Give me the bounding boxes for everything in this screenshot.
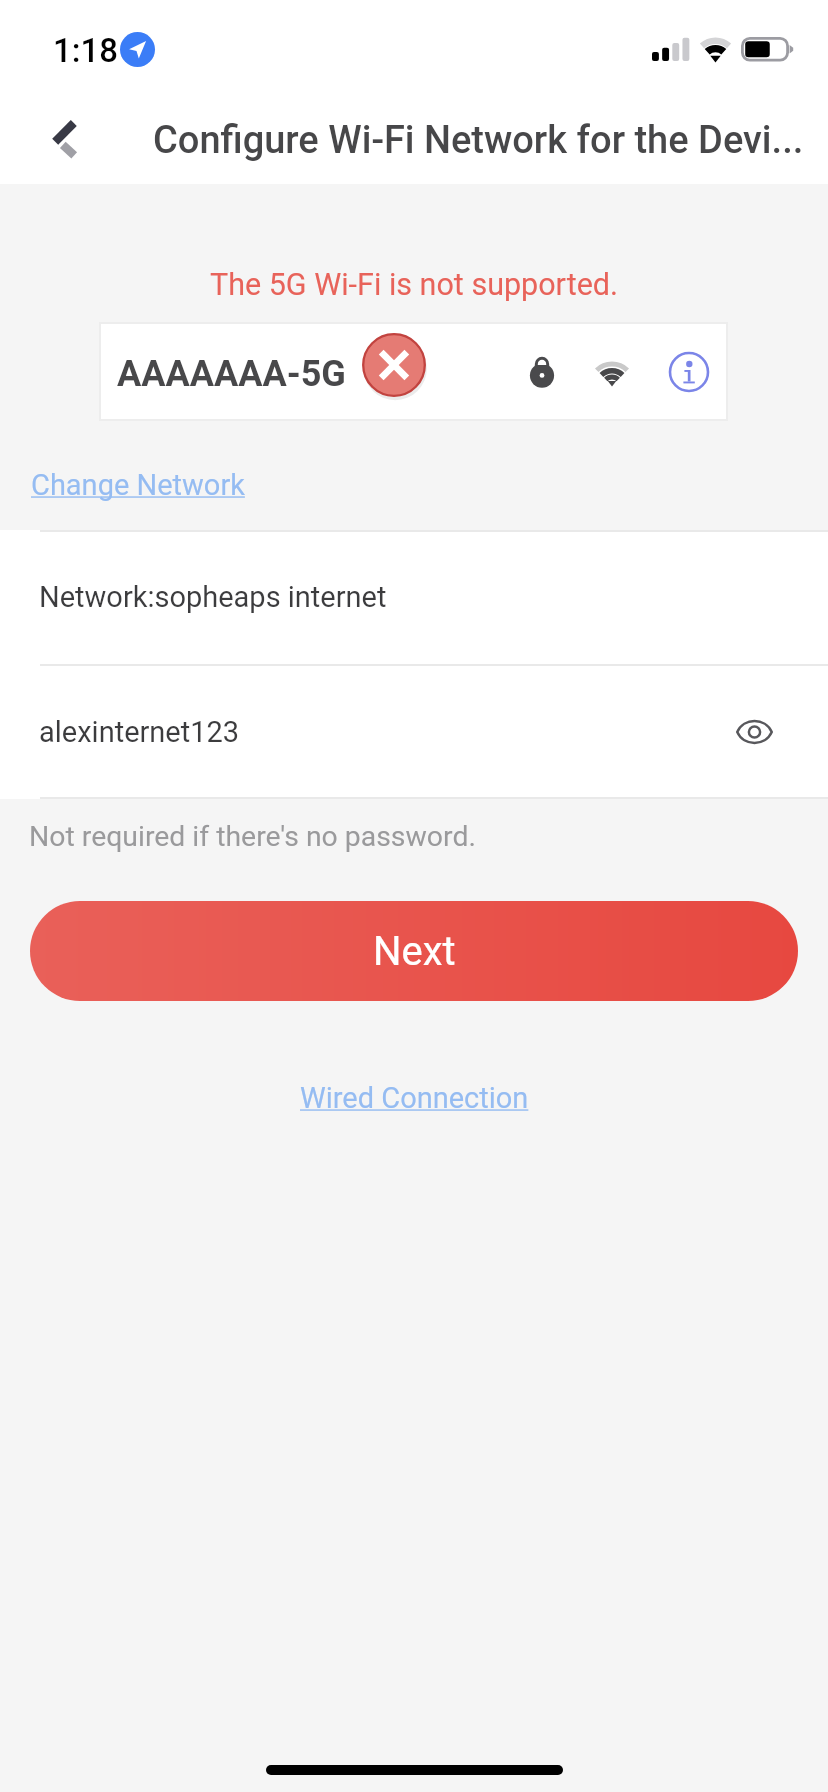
staticText: The 5G Wi-Fi is not supported. <box>0 267 828 303</box>
staticText: AAAAAAA-5G <box>117 353 346 395</box>
staticText: Network:sopheaps internet <box>39 580 387 614</box>
button[interactable]: Show password <box>728 706 780 758</box>
staticText: Change Network <box>31 468 245 502</box>
button[interactable]: AAAAAAA-5G <box>99 322 728 421</box>
button[interactable]: alexinternet123 <box>0 666 828 798</box>
staticText: Next <box>373 928 456 975</box>
staticText: Configure Wi-Fi Network for the Devi... <box>153 118 804 163</box>
button[interactable]: Remove network <box>362 333 426 397</box>
staticText: alexinternet123 <box>39 715 240 749</box>
staticText: Wired Connection <box>300 1081 529 1115</box>
button[interactable]: Network:sopheaps internet <box>0 530 828 664</box>
staticText: 1:18 <box>53 31 119 70</box>
staticText: Not required if there's no password. <box>29 820 476 853</box>
button[interactable]: Change Network <box>30 468 246 502</box>
button[interactable]: Next <box>30 901 798 1001</box>
button[interactable]: Info <box>668 351 710 393</box>
button[interactable]: Back <box>30 104 98 172</box>
button[interactable]: Wired Connection <box>300 1081 529 1115</box>
